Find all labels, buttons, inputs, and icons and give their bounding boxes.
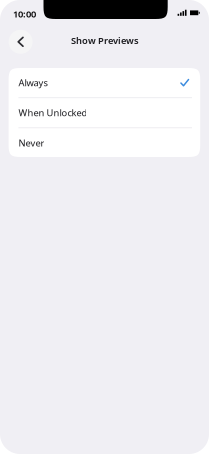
staticText: When Unlocked xyxy=(18,106,87,119)
staticText: Show Previews xyxy=(71,34,139,47)
button[interactable]: Never xyxy=(9,128,200,157)
staticText: Never xyxy=(18,136,44,149)
button[interactable]: When Unlocked xyxy=(9,98,200,127)
button[interactable]: Always xyxy=(9,68,200,97)
button[interactable]: Back xyxy=(9,30,33,54)
staticText: 10:00 xyxy=(13,8,36,20)
staticText: Always xyxy=(18,76,47,89)
